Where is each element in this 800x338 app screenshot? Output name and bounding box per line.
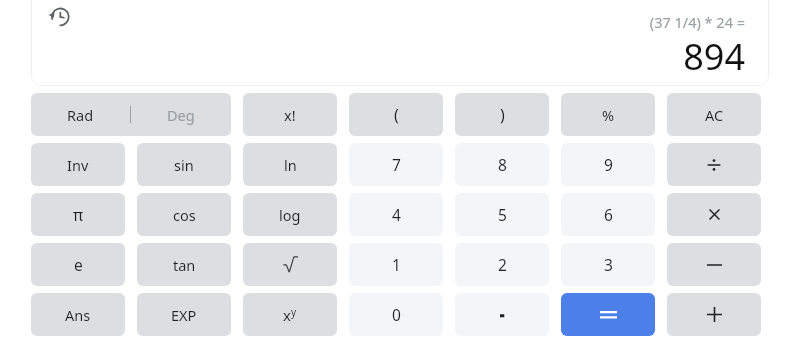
- staticText: 9: [604, 154, 613, 175]
- staticText: %: [602, 105, 615, 125]
- staticText: cos: [173, 205, 196, 225]
- staticText: 5: [498, 204, 507, 225]
- button[interactable]: 0: [349, 293, 443, 336]
- button[interactable]: 3: [561, 243, 655, 286]
- button[interactable]: Multiply: [667, 193, 761, 236]
- button[interactable]: Square root: [243, 243, 337, 286]
- staticText: xy: [283, 305, 297, 325]
- button[interactable]: Deg: [131, 93, 231, 136]
- staticText: 1: [392, 254, 401, 275]
- button[interactable]: ln: [243, 143, 337, 186]
- button[interactable]: ): [455, 93, 549, 136]
- button[interactable]: 9: [561, 143, 655, 186]
- button[interactable]: Divide: [667, 143, 761, 186]
- button[interactable]: EXP: [137, 293, 231, 336]
- button[interactable]: %: [561, 93, 655, 136]
- button[interactable]: Minus: [667, 243, 761, 286]
- staticText: ln: [284, 155, 297, 175]
- button[interactable]: Equals: [561, 293, 655, 336]
- staticText: 8: [498, 154, 507, 175]
- staticText: Inv: [67, 155, 89, 175]
- staticText: AC: [705, 105, 724, 125]
- button[interactable]: e: [31, 243, 125, 286]
- staticText: (: [394, 104, 399, 126]
- button[interactable]: Decimal point: [455, 293, 549, 336]
- staticText: 4: [392, 204, 401, 225]
- staticText: 2: [498, 254, 507, 275]
- button[interactable]: 8: [455, 143, 549, 186]
- button[interactable]: History: [31, 0, 769, 86]
- staticText: sin: [174, 155, 194, 175]
- staticText: Ans: [65, 305, 91, 325]
- staticText: 894: [683, 32, 745, 81]
- button[interactable]: 5: [455, 193, 549, 236]
- staticText: 6: [604, 204, 613, 225]
- button[interactable]: 1: [349, 243, 443, 286]
- button[interactable]: 6: [561, 193, 655, 236]
- staticText: 7: [392, 154, 401, 175]
- button[interactable]: log: [243, 193, 337, 236]
- button[interactable]: (: [349, 93, 443, 136]
- button[interactable]: tan: [137, 243, 231, 286]
- staticText: ): [500, 104, 505, 126]
- staticText: Deg: [167, 105, 195, 125]
- button[interactable]: cos: [137, 193, 231, 236]
- button[interactable]: AC: [667, 93, 761, 136]
- button[interactable]: Rad: [31, 93, 130, 136]
- button[interactable]: 2: [455, 243, 549, 286]
- button[interactable]: 7: [349, 143, 443, 186]
- staticText: 0: [392, 304, 401, 325]
- staticText: 3: [604, 254, 613, 275]
- button[interactable]: sin: [137, 143, 231, 186]
- button[interactable]: 4: [349, 193, 443, 236]
- staticText: log: [279, 205, 301, 225]
- button[interactable]: Inv: [31, 143, 125, 186]
- button[interactable]: Plus: [667, 293, 761, 336]
- staticText: EXP: [171, 305, 197, 325]
- staticText: tan: [173, 255, 196, 275]
- staticText: e: [74, 254, 83, 275]
- button[interactable]: x!: [243, 93, 337, 136]
- button[interactable]: π: [31, 193, 125, 236]
- button[interactable]: History: [45, 2, 73, 30]
- staticText: x!: [284, 105, 296, 125]
- staticText: Rad: [67, 105, 94, 125]
- staticText: (37 1/4) * 24 =: [649, 12, 745, 32]
- button[interactable]: Ans: [31, 293, 125, 336]
- button[interactable]: xy: [243, 293, 337, 336]
- staticText: π: [73, 204, 84, 225]
